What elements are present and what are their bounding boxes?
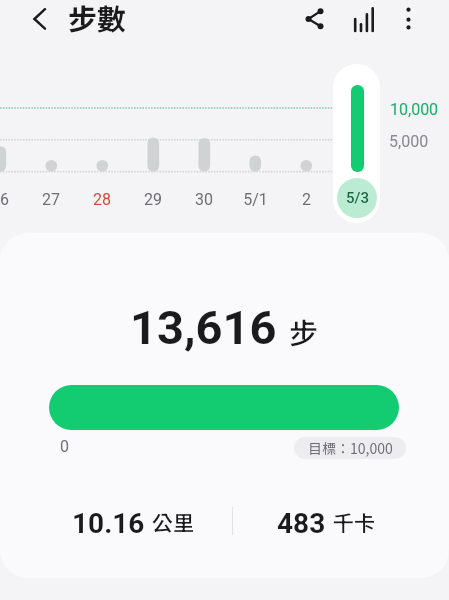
button[interactable]: Chart xyxy=(344,0,388,44)
staticText: 30 xyxy=(195,190,213,209)
staticText: 千卡 xyxy=(333,507,375,535)
staticText: 28 xyxy=(93,190,111,209)
staticText: 5/1 xyxy=(243,190,268,209)
button[interactable]: 5/3 xyxy=(333,64,380,223)
staticText: 5,000 xyxy=(389,132,429,151)
staticText: 2 xyxy=(302,190,311,209)
staticText: 10.16 xyxy=(72,507,145,535)
staticText: 13,616 xyxy=(130,300,277,355)
staticText: 10,000 xyxy=(390,100,439,119)
button[interactable]: Share xyxy=(292,0,336,44)
staticText: 483 xyxy=(277,507,326,535)
staticText: 步 xyxy=(289,310,319,352)
staticText: 目標：10,000 xyxy=(308,438,393,458)
staticText: 步數 xyxy=(68,0,127,38)
staticText: 0 xyxy=(60,437,69,456)
staticText: 公里 xyxy=(152,507,194,535)
button[interactable]: Back xyxy=(16,0,60,44)
staticText: 27 xyxy=(42,190,60,209)
staticText: 29 xyxy=(144,190,162,209)
button[interactable]: More options xyxy=(386,0,430,44)
staticText: 5/3 xyxy=(346,189,369,207)
staticText: 26 xyxy=(0,190,9,209)
